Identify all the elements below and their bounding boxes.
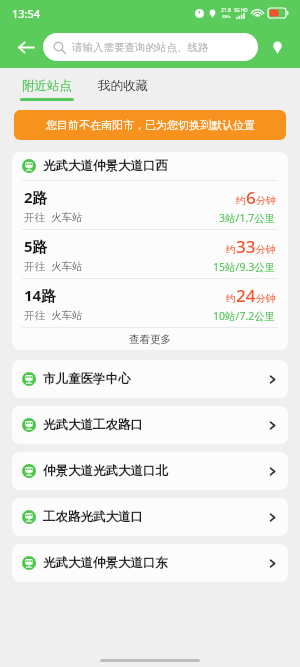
button[interactable]: 光武大道仲景大道口西	[12, 152, 288, 180]
staticText: 开往	[24, 211, 45, 224]
staticText: 3站/1.7公里	[219, 211, 276, 225]
staticText: 约24分钟	[226, 284, 276, 307]
button[interactable]: 附近站点	[20, 74, 74, 105]
staticText: 查看更多	[129, 333, 171, 346]
staticText: 5G HD	[234, 7, 248, 13]
button[interactable]: 我的收藏	[96, 74, 150, 105]
staticText: 光武大道仲景大道口西	[43, 158, 168, 174]
button[interactable]: 市儿童医学中心	[12, 360, 288, 398]
staticText: 光武大道工农路口	[43, 417, 143, 433]
staticText: 约33分钟	[226, 235, 276, 258]
button[interactable]: 您目前不在南阳市，已为您切换到默认位置	[14, 110, 286, 140]
staticText: 13:54	[12, 6, 41, 21]
button[interactable]: 工农路光武大道口	[12, 498, 288, 536]
staticText: 市儿童医学中心	[43, 371, 131, 387]
button[interactable]: 查看更多	[12, 328, 288, 350]
button[interactable]: 光武大道工农路口	[12, 406, 288, 444]
staticText: 附近站点	[22, 78, 72, 94]
button[interactable]: Back	[10, 32, 40, 62]
button[interactable]: 仲景大道光武大道口北	[12, 452, 288, 490]
staticText: 火车站	[51, 260, 83, 273]
staticText: 您目前不在南阳市，已为您切换到默认位置	[46, 118, 255, 132]
staticText: 请输入需要查询的站点、线路	[72, 41, 209, 54]
staticText: 5路	[24, 236, 48, 256]
staticText: 15站/9.3公里	[213, 260, 276, 274]
staticText: 仲景大道光武大道口北	[43, 463, 168, 479]
button[interactable]: 5路	[12, 230, 288, 278]
staticText: 14路	[24, 285, 57, 305]
staticText: 工农路光武大道口	[43, 509, 143, 525]
staticText: KB/s	[222, 14, 231, 19]
button[interactable]: 请输入需要查询的站点、线路	[43, 33, 258, 61]
staticText: 开往	[24, 260, 45, 273]
button[interactable]: 2路	[12, 181, 288, 229]
staticText: 约6分钟	[236, 186, 276, 209]
button[interactable]: 14路	[12, 279, 288, 327]
staticText: 我的收藏	[98, 78, 148, 94]
staticText: 10站/7.2公里	[213, 309, 276, 323]
staticText: 光武大道仲景大道口东	[43, 555, 168, 571]
staticText: 火车站	[51, 211, 83, 224]
button[interactable]: Location	[264, 34, 290, 60]
staticText: 开往	[24, 309, 45, 322]
staticText: 21.8	[221, 7, 231, 14]
staticText: 2路	[24, 187, 48, 207]
button[interactable]: 光武大道仲景大道口东	[12, 544, 288, 582]
staticText: 火车站	[51, 309, 83, 322]
